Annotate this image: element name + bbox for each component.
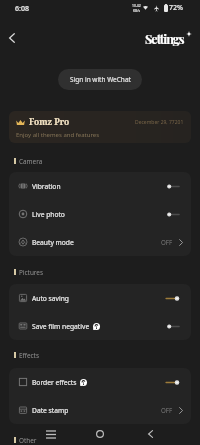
button[interactable]: Date stamp	[9, 396, 191, 424]
staticText: December 29, 77201	[135, 119, 184, 126]
button[interactable]: Border effects	[9, 368, 191, 396]
button[interactable]: Live photo	[9, 200, 191, 228]
staticText: Date stamp	[32, 406, 69, 415]
button[interactable]: Auto saving	[9, 284, 191, 312]
staticText: 6:08	[15, 4, 29, 14]
button[interactable]: Save film negative	[9, 312, 191, 340]
staticText: Pictures	[19, 268, 44, 276]
staticText: Camera	[19, 157, 43, 165]
button[interactable]: Recent apps	[40, 423, 62, 445]
button[interactable]: Sign in with WeChat	[58, 69, 142, 90]
staticText: 10.42	[132, 3, 141, 8]
staticText: Settings	[145, 30, 184, 47]
button[interactable]: Beauty mode	[9, 228, 191, 256]
staticText: OFF	[161, 238, 173, 246]
button[interactable]: Back	[139, 423, 161, 445]
staticText: Effects	[19, 351, 39, 359]
button[interactable]: Home	[89, 423, 111, 445]
staticText: Live photo	[32, 210, 65, 219]
button[interactable]: Vibration	[9, 172, 191, 200]
staticText: Sign in with WeChat	[70, 75, 131, 84]
button[interactable]: Back	[1, 27, 23, 49]
staticText: Fomz Pro	[29, 116, 70, 128]
staticText: Border effects	[32, 378, 77, 387]
staticText: KB/s	[133, 8, 141, 13]
staticText: 72%	[169, 3, 183, 13]
staticText: Auto saving	[32, 294, 69, 303]
staticText: Beauty mode	[32, 238, 74, 247]
staticText: Enjoy all themes and features	[16, 131, 100, 139]
staticText: Vibration	[32, 182, 61, 191]
staticText: OFF	[161, 406, 173, 414]
staticText: Save film negative	[32, 322, 90, 331]
button[interactable]: Fomz Pro	[9, 111, 191, 143]
staticText: Other	[19, 436, 37, 444]
